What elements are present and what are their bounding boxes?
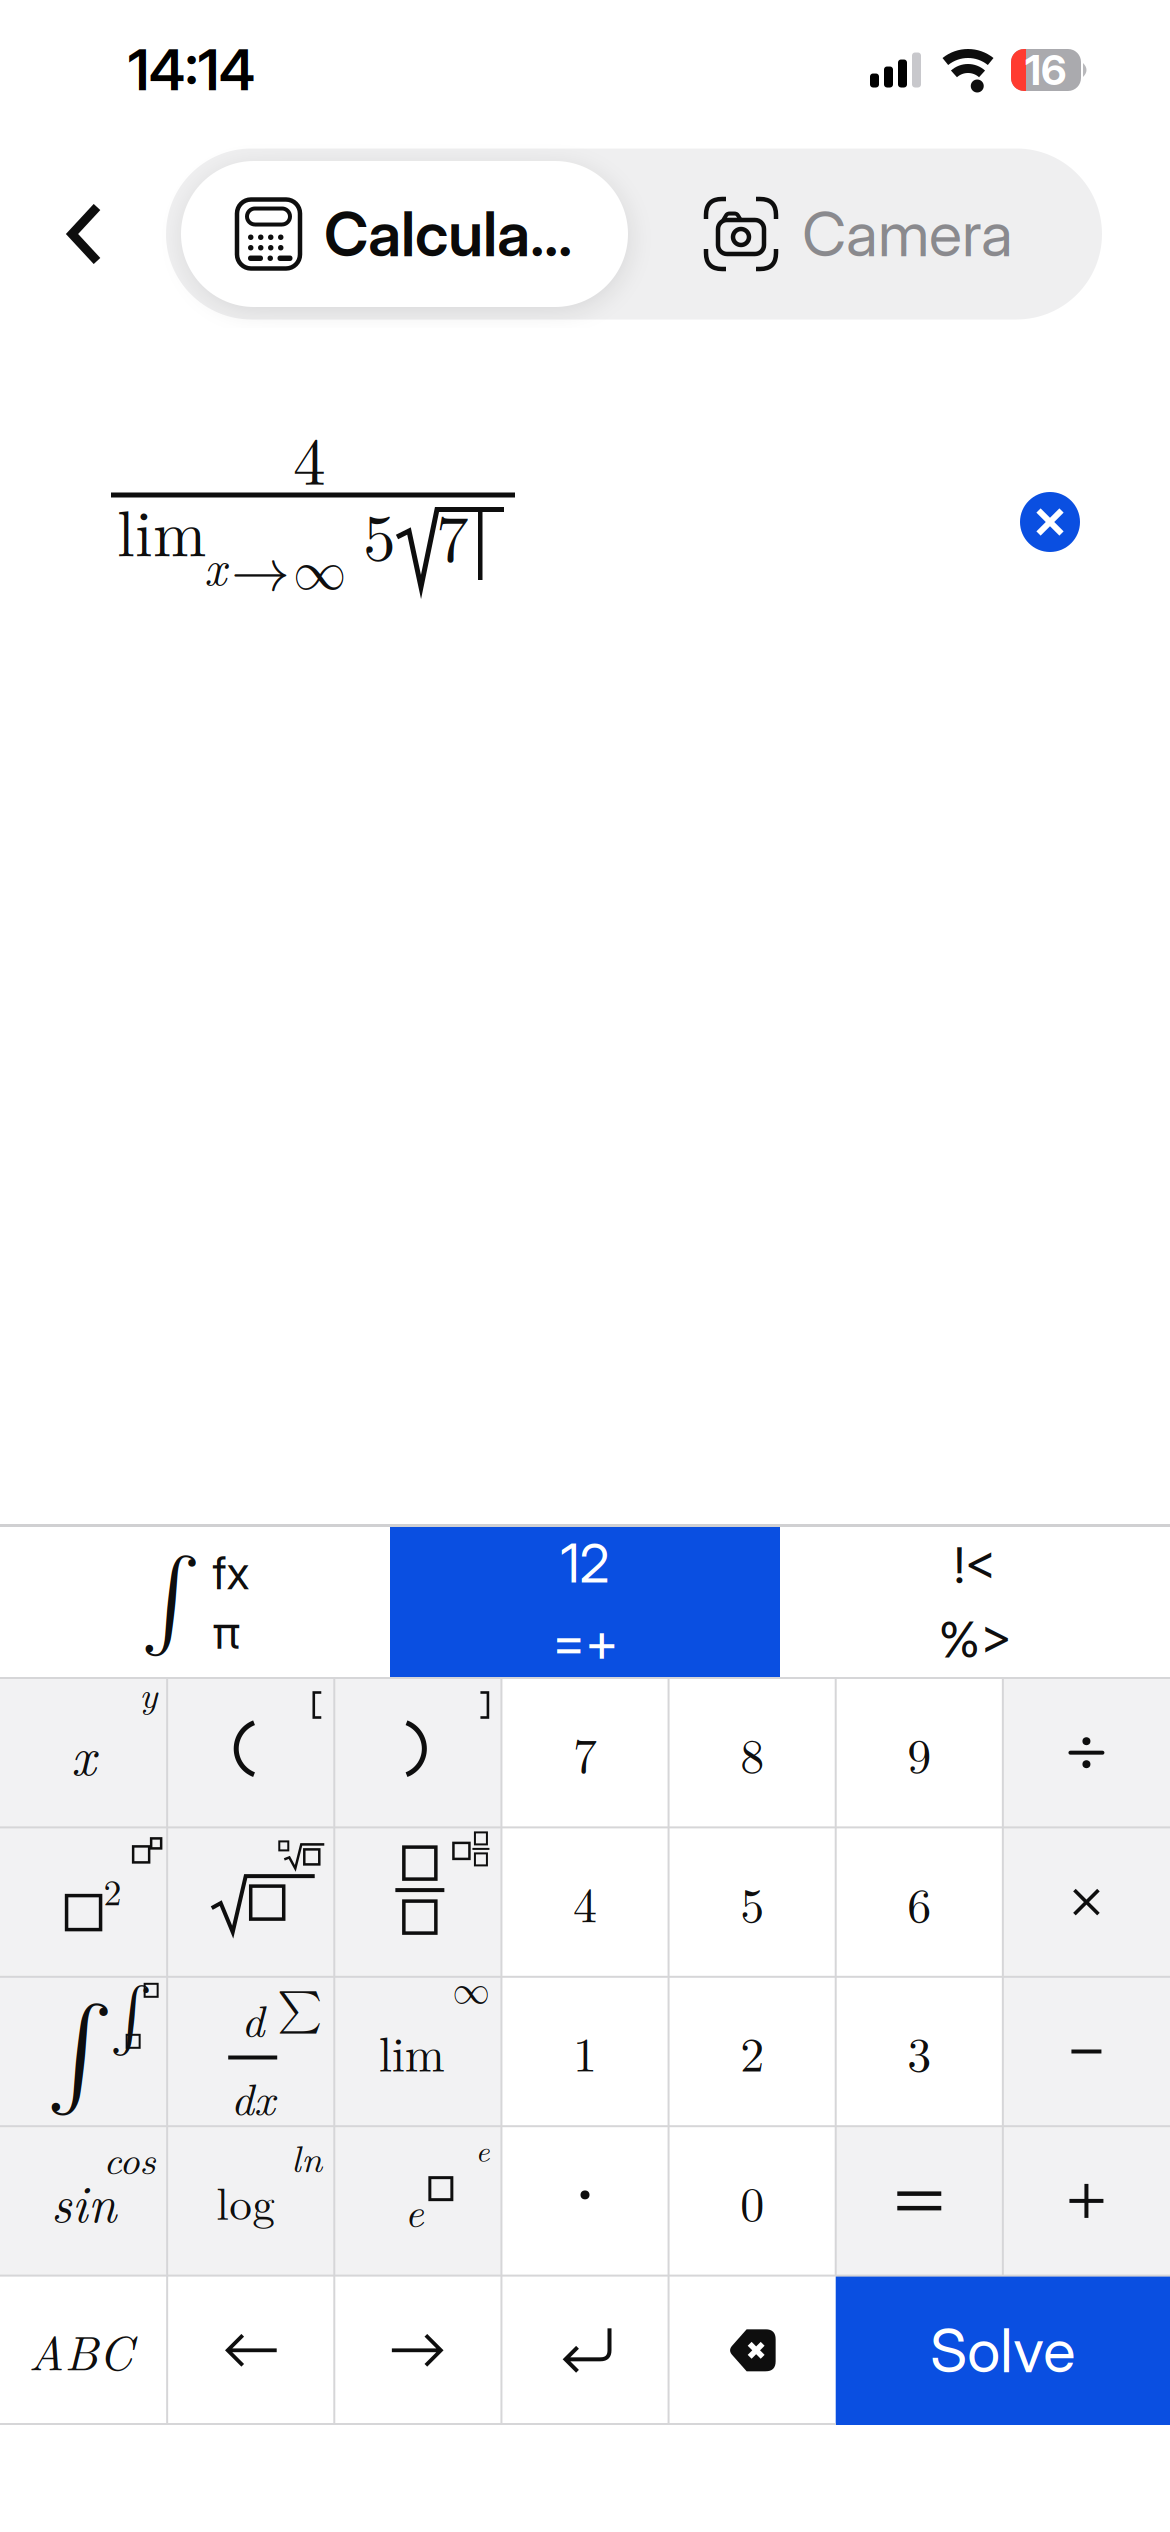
staticText: ∫ (140, 1555, 200, 1646)
button[interactable]: 2 (669, 1977, 836, 2126)
staticText: Camera (802, 198, 1013, 270)
staticText: ∞ (293, 546, 346, 599)
staticText: ABC (29, 2316, 133, 2384)
staticText: fx (212, 1546, 249, 1599)
staticText: ∞ (452, 1973, 489, 2010)
staticText: e (475, 2127, 489, 2171)
button[interactable]: Subtract (1003, 1977, 1170, 2126)
button[interactable]: Fraction (334, 1827, 501, 1977)
staticText: 9 (907, 1719, 931, 1787)
staticText: lim (117, 484, 206, 575)
staticText: 2 (740, 2017, 764, 2085)
button[interactable]: Camera (706, 198, 1013, 270)
button[interactable]: Equals (836, 2126, 1003, 2276)
button[interactable]: 3 (836, 1977, 1003, 2126)
staticText: ∑ (277, 1989, 322, 2031)
button[interactable]: log (167, 2126, 334, 2276)
button[interactable]: Solve (836, 2276, 1170, 2425)
button[interactable]: Divide (1003, 1678, 1170, 1827)
staticText: x (204, 531, 226, 599)
staticText: d (241, 1986, 264, 2050)
button[interactable]: Add (1003, 2126, 1170, 2276)
button[interactable]: Square root (167, 1827, 334, 1977)
button[interactable]: Symbols keyboard (780, 1527, 1170, 1678)
button[interactable]: 0 (669, 2126, 836, 2276)
staticText: ln (291, 2130, 322, 2183)
button[interactable]: sin (0, 2126, 167, 2276)
button[interactable]: 7 (501, 1678, 668, 1827)
staticText: 5 (363, 487, 396, 580)
button[interactable]: Move right (334, 2276, 501, 2425)
button[interactable]: ∫ (0, 1977, 167, 2126)
button[interactable]: lim (334, 1977, 501, 2126)
button[interactable]: Open parenthesis (167, 1678, 334, 1827)
staticText: 5 (740, 1868, 764, 1936)
button[interactable]: Clear (1020, 492, 1080, 552)
staticText: 8 (740, 1719, 764, 1787)
staticText: 1 (573, 2017, 597, 2085)
button[interactable]: Close parenthesis (334, 1678, 501, 1827)
staticText: 3 (907, 2017, 931, 2085)
button[interactable]: x (0, 1678, 167, 1827)
staticText: =+ (552, 1610, 618, 1673)
button[interactable]: 6 (836, 1827, 1003, 1977)
staticText: ∫ (110, 1985, 153, 2049)
button[interactable]: Functions keyboard (0, 1527, 390, 1678)
staticText: Calcula... (324, 198, 572, 270)
staticText: π (212, 1605, 240, 1659)
staticText: 4 (293, 411, 326, 504)
staticText: 16 (1025, 46, 1067, 94)
staticText: 12 (560, 1532, 609, 1594)
staticText: 7 (436, 488, 469, 581)
staticText: e (405, 2181, 424, 2239)
button[interactable]: Back (66, 202, 103, 266)
button[interactable]: 4 (501, 1827, 668, 1977)
staticText: 4 (573, 1868, 597, 1936)
button[interactable]: Square (0, 1827, 167, 1977)
button[interactable]: Return (501, 2276, 668, 2425)
staticText: 7 (573, 1719, 597, 1787)
button[interactable]: Numbers keyboard (390, 1527, 780, 1678)
button[interactable]: ABC (0, 2276, 167, 2425)
staticText: Solve (930, 2315, 1075, 2386)
button[interactable]: d (167, 1977, 334, 2126)
button[interactable]: 8 (669, 1678, 836, 1827)
staticText: cos (103, 2129, 155, 2186)
staticText: 6 (907, 1868, 931, 1936)
button[interactable]: e (334, 2126, 501, 2276)
button[interactable]: 5 (669, 1827, 836, 1977)
button[interactable]: Multiply (1003, 1827, 1170, 1977)
staticText: 14:14 (128, 37, 255, 103)
button[interactable]: 1 (501, 1977, 668, 2126)
staticText: sin (51, 2165, 116, 2237)
staticText: dx (231, 2064, 275, 2129)
button[interactable]: Calcula... (181, 161, 628, 307)
staticText: 2 (104, 1865, 122, 1916)
button[interactable]: Delete (669, 2276, 836, 2425)
button[interactable]: Move left (167, 2276, 334, 2425)
button[interactable]: Decimal point (501, 2126, 668, 2276)
staticText: log (216, 2169, 275, 2233)
staticText: %> (938, 1610, 1011, 1669)
staticText: y (139, 1666, 157, 1719)
staticText: x (71, 1715, 96, 1790)
staticText: ∫ (46, 2003, 113, 2104)
button[interactable]: 9 (836, 1678, 1003, 1827)
staticText: lim (379, 2017, 445, 2085)
staticText: !< (954, 1536, 996, 1594)
staticText: 0 (740, 2167, 764, 2235)
staticText: → (231, 543, 290, 602)
